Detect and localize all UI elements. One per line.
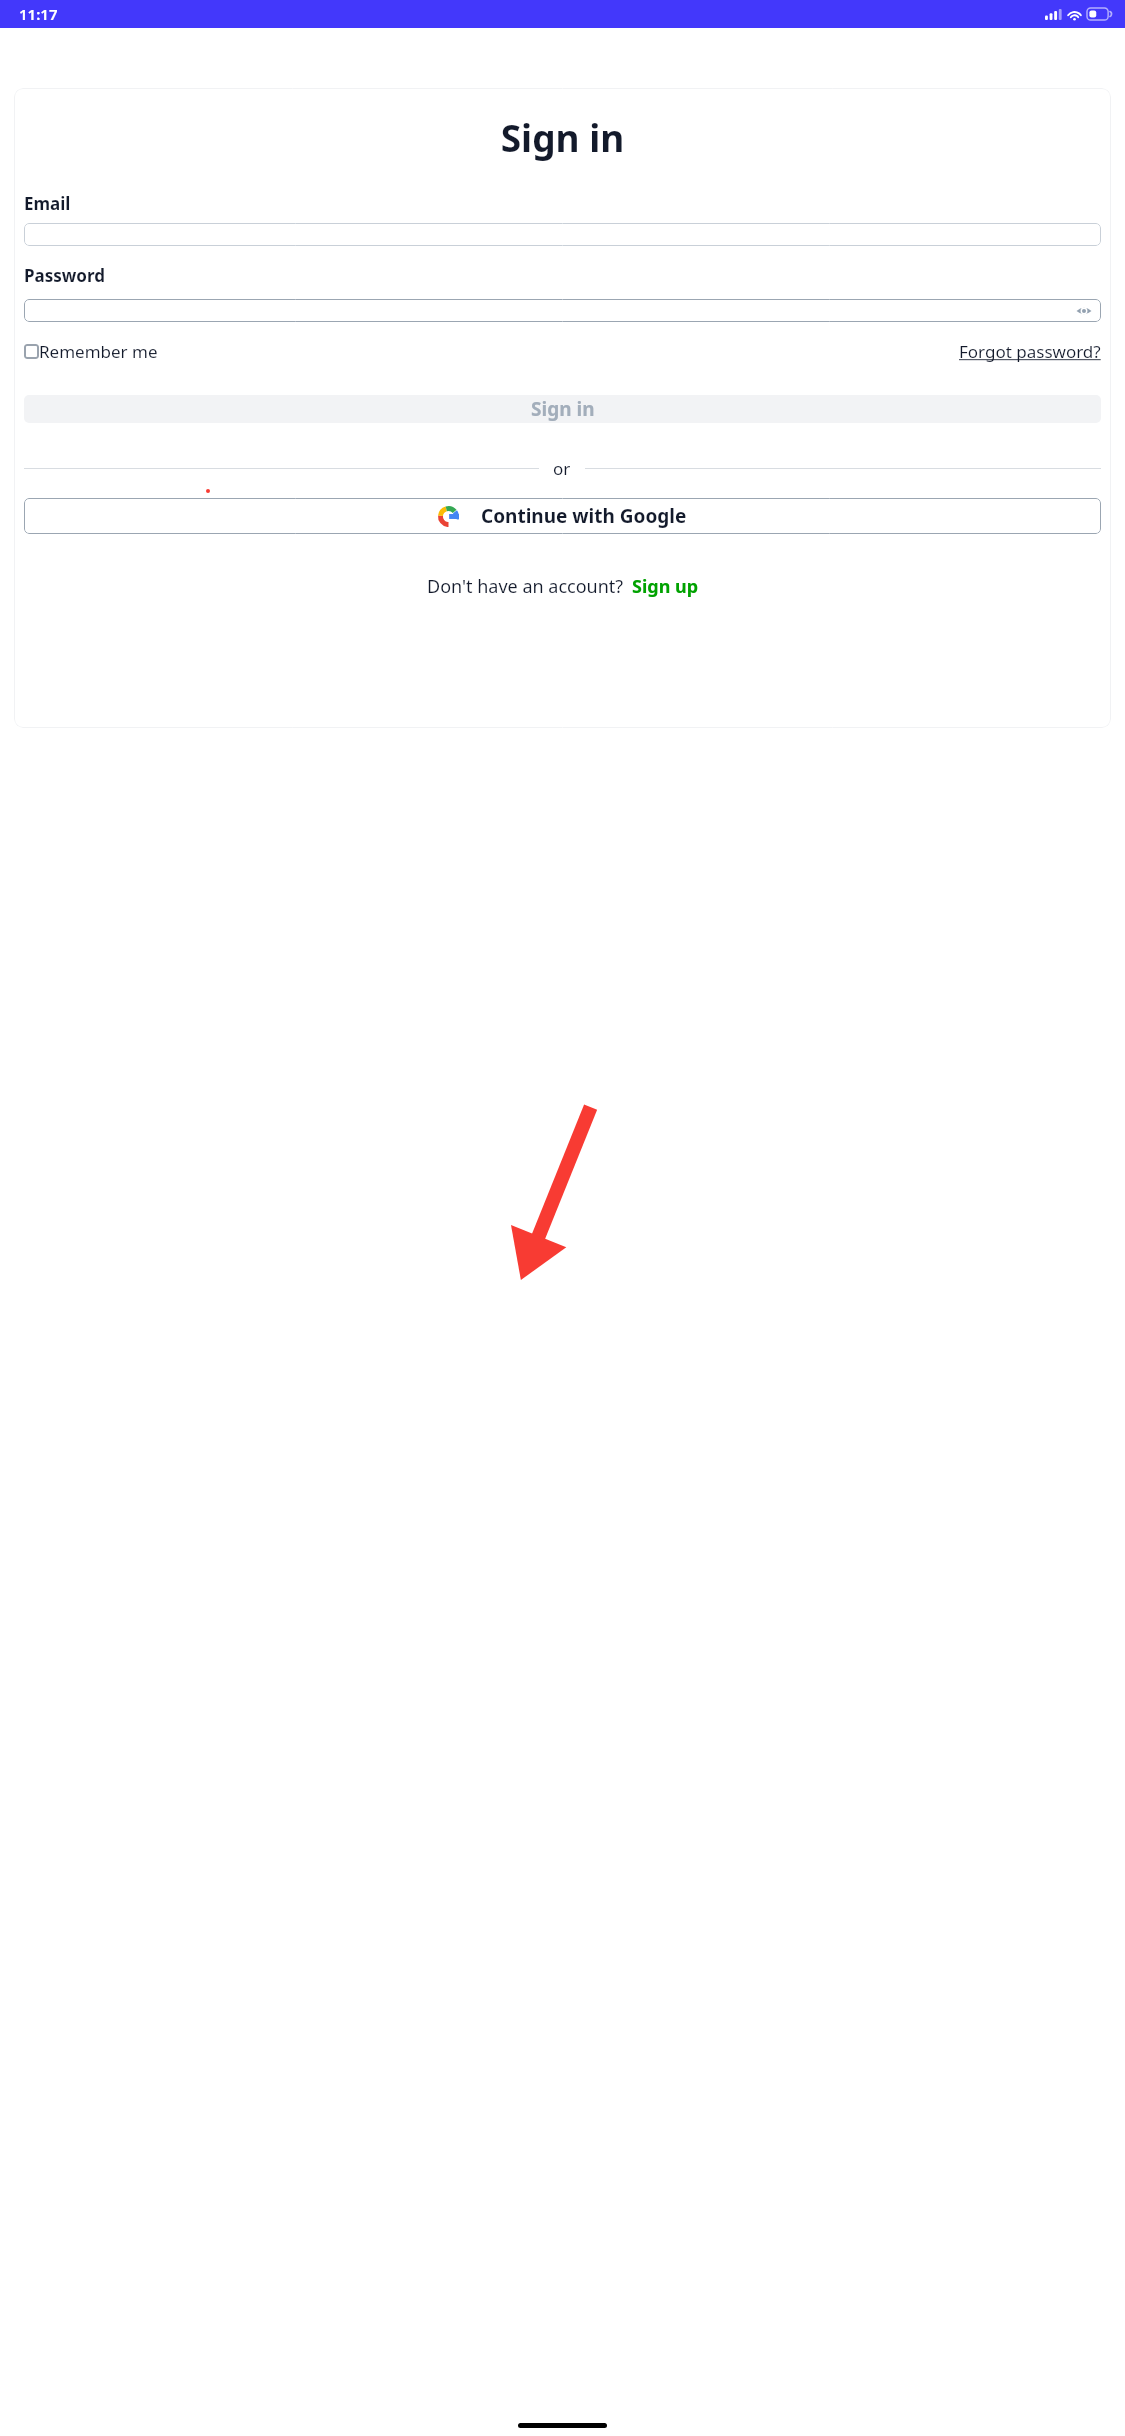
staticText: Continue with Google <box>481 503 687 529</box>
button[interactable]: Sign in <box>24 395 1101 423</box>
staticText: Email <box>24 192 71 215</box>
button[interactable]: Continue with Google <box>24 498 1101 534</box>
button[interactable]: Show password <box>24 299 1101 322</box>
staticText: Sign in <box>531 396 595 422</box>
staticText: or <box>553 457 571 480</box>
button[interactable]: Show password <box>1076 303 1092 319</box>
button[interactable]: Sign up <box>632 574 699 599</box>
staticText: Forgot password? <box>959 340 1101 363</box>
staticText: Don't have an account? <box>427 574 624 599</box>
staticText: Sign up <box>632 574 699 599</box>
staticText: 11:17 <box>19 4 58 24</box>
staticText: Sign in <box>24 112 1101 162</box>
staticText: Password <box>24 264 105 287</box>
button[interactable] <box>24 223 1101 246</box>
button[interactable]: Forgot password? <box>959 340 1101 363</box>
staticText: Remember me <box>39 340 158 363</box>
button[interactable]: Remember me <box>24 338 158 365</box>
